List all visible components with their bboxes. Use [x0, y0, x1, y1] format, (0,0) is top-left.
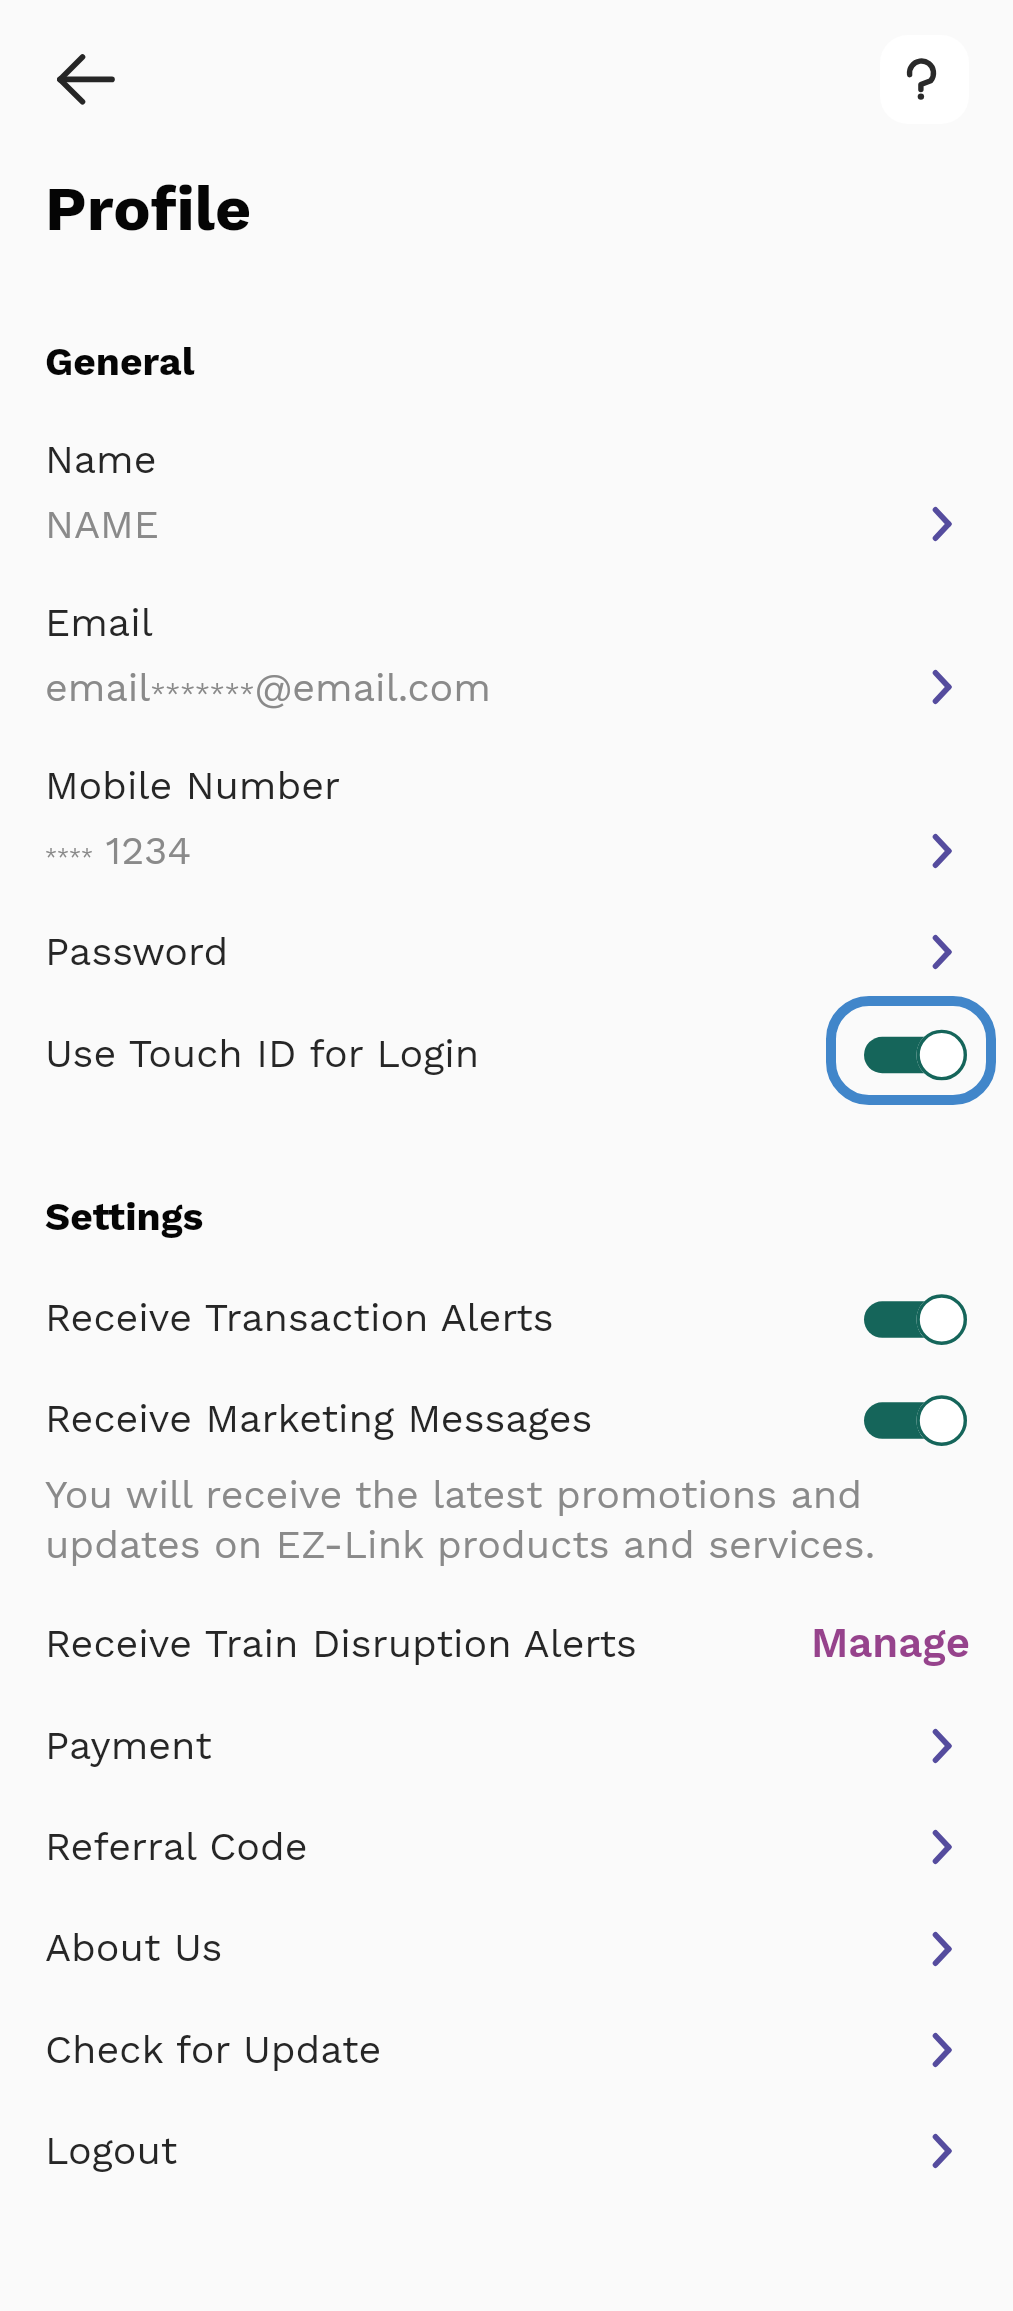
staticText: Name — [45, 436, 157, 482]
staticText: Profile — [45, 172, 252, 245]
button[interactable]: Payment — [894, 1712, 986, 1780]
staticText: Receive Train Disruption Alerts — [45, 1620, 637, 1666]
button[interactable]: Check for Update — [894, 2016, 986, 2084]
button[interactable] — [0, 2114, 1013, 2215]
staticText: About Us — [45, 1924, 223, 1970]
button[interactable] — [0, 1608, 1013, 1709]
button[interactable] — [0, 902, 1013, 997]
staticText: Manage — [811, 1618, 970, 1667]
button[interactable] — [0, 2013, 1013, 2114]
button[interactable]: Change password — [894, 918, 986, 986]
button[interactable]: Receive Marketing Messages toggle — [856, 1383, 976, 1459]
button[interactable] — [0, 1912, 1013, 2013]
staticText: Password — [45, 928, 229, 974]
button[interactable] — [0, 574, 1013, 734]
staticText: Mobile Number — [45, 762, 341, 808]
staticText: Use Touch ID for Login — [45, 1030, 480, 1076]
staticText: Payment — [45, 1722, 212, 1768]
button[interactable] — [0, 999, 1013, 1105]
button[interactable]: Use Touch ID for Login toggle — [826, 996, 996, 1105]
button[interactable]: Back — [32, 33, 132, 129]
staticText: Receive Marketing Messages — [45, 1395, 593, 1441]
button[interactable]: Receive Transaction Alerts toggle — [856, 1282, 976, 1358]
staticText: Settings — [45, 1194, 204, 1240]
button[interactable]: About Us — [894, 1915, 986, 1983]
button[interactable]: Logout — [894, 2117, 986, 2185]
staticText: **** 1234 — [45, 827, 192, 873]
staticText: General — [45, 339, 195, 385]
button[interactable] — [0, 410, 1013, 570]
staticText: You will receive the latest promotions a… — [45, 1471, 876, 1568]
staticText: Logout — [45, 2127, 178, 2173]
button[interactable]: Edit name — [894, 490, 986, 558]
button[interactable] — [0, 1710, 1013, 1811]
button[interactable]: Edit mobile number — [894, 817, 986, 885]
button[interactable] — [0, 1382, 1013, 1483]
button[interactable]: Referral Code — [894, 1813, 986, 1881]
staticText: Check for Update — [45, 2026, 382, 2072]
button[interactable] — [0, 1811, 1013, 1912]
button[interactable] — [0, 1281, 1013, 1382]
button[interactable] — [0, 738, 1013, 898]
staticText: email*******@email.com — [45, 664, 491, 710]
button[interactable]: Edit email — [894, 653, 986, 721]
button[interactable]: Manage — [790, 1608, 990, 1709]
staticText: Receive Transaction Alerts — [45, 1294, 554, 1340]
staticText: NAME — [45, 501, 159, 547]
staticText: Referral Code — [45, 1823, 308, 1869]
button[interactable]: Help — [880, 35, 969, 124]
staticText: Email — [45, 599, 153, 645]
